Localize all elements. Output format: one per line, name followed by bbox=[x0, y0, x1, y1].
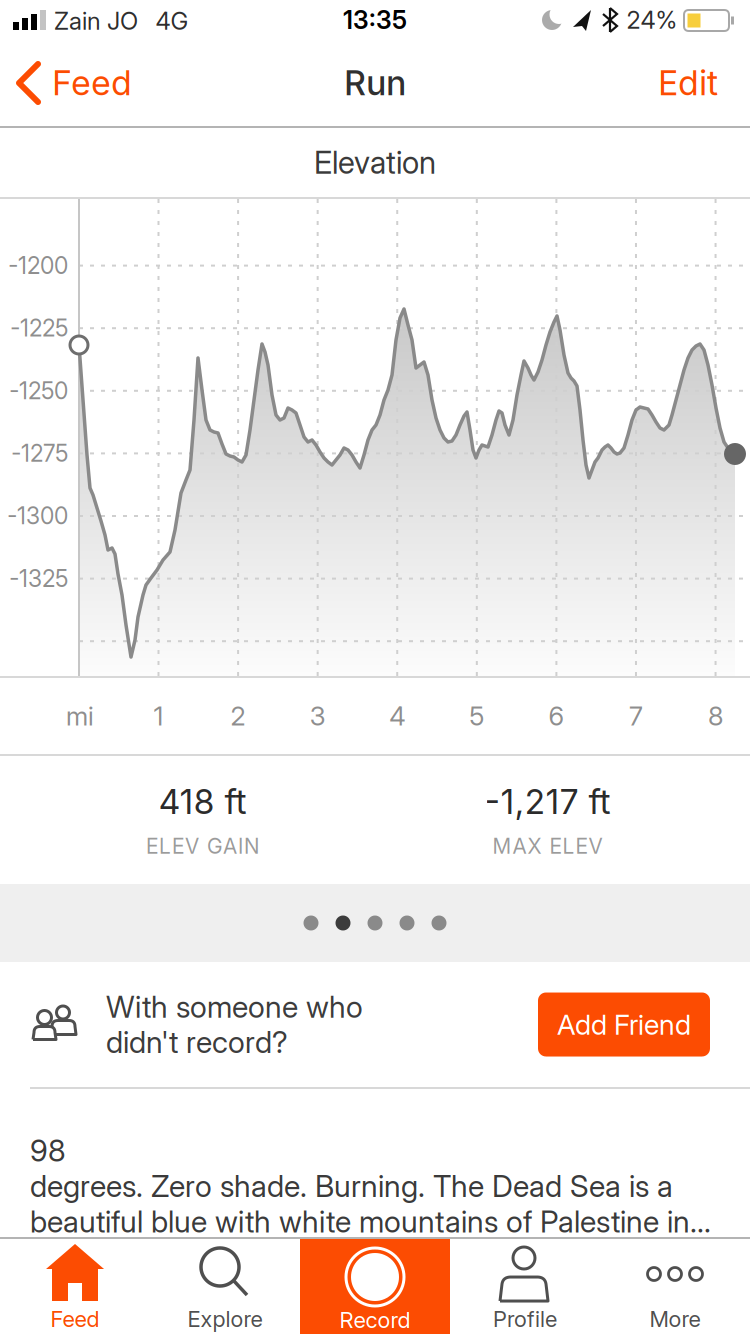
button[interactable]: Feed bbox=[0, 1239, 150, 1334]
staticText: -1,217 ft bbox=[484, 782, 610, 822]
staticText: 4 bbox=[389, 701, 405, 731]
staticText: Elevation bbox=[314, 144, 436, 181]
staticText: -1275 bbox=[11, 440, 68, 467]
staticText: 1 bbox=[153, 701, 163, 731]
staticText: 24% bbox=[626, 6, 677, 34]
button[interactable]: Edit bbox=[658, 63, 750, 103]
staticText: 7 bbox=[629, 701, 643, 731]
staticText: MAX ELEV bbox=[492, 834, 602, 858]
staticText: Zain JO bbox=[54, 7, 138, 35]
staticText: Feed bbox=[50, 1306, 99, 1332]
staticText: Record bbox=[339, 1307, 410, 1333]
staticText: 3 bbox=[310, 701, 326, 731]
button[interactable]: More bbox=[600, 1239, 750, 1334]
staticText: -1325 bbox=[9, 565, 68, 592]
staticText: Edit bbox=[658, 63, 718, 103]
staticText: -1225 bbox=[10, 315, 68, 342]
staticText: 8 bbox=[708, 701, 723, 731]
staticText: With someone who didn't record? bbox=[106, 989, 363, 1060]
staticText: 98 bbox=[30, 1133, 66, 1168]
button[interactable]: Record bbox=[300, 1239, 450, 1334]
button[interactable]: Feed bbox=[0, 60, 132, 106]
button[interactable]: Add Friend bbox=[538, 992, 710, 1056]
staticText: ELEV GAIN bbox=[146, 834, 259, 858]
staticText: Profile bbox=[493, 1306, 557, 1332]
staticText: degrees. Zero shade. Burning. The Dead S… bbox=[30, 1168, 673, 1204]
staticText: beautiful blue with white mountains of P… bbox=[30, 1204, 711, 1239]
staticText: 5 bbox=[469, 701, 484, 731]
staticText: -1250 bbox=[9, 377, 68, 404]
staticText: -1200 bbox=[8, 252, 68, 279]
staticText: Explore bbox=[187, 1306, 262, 1332]
staticText: -1300 bbox=[7, 502, 68, 529]
staticText: Add Friend bbox=[557, 1008, 691, 1041]
staticText: Run bbox=[344, 63, 406, 103]
staticText: 6 bbox=[548, 701, 564, 731]
staticText: 13:35 bbox=[343, 5, 407, 35]
button[interactable]: Profile bbox=[450, 1239, 600, 1334]
staticText: Feed bbox=[52, 63, 132, 103]
staticText: mi bbox=[66, 701, 94, 731]
staticText: More bbox=[649, 1306, 700, 1332]
staticText: 418 ft bbox=[158, 782, 246, 822]
staticText: 2 bbox=[231, 701, 246, 731]
staticText: 4G bbox=[155, 7, 188, 35]
button[interactable]: Explore bbox=[150, 1239, 300, 1334]
